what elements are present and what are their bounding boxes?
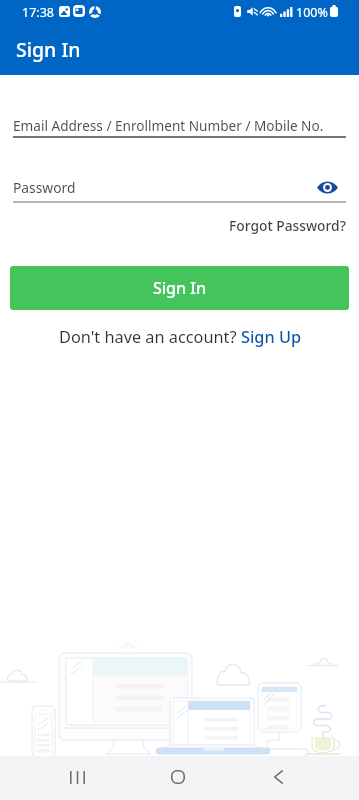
staticText: Password xyxy=(13,178,76,197)
button[interactable]: Back xyxy=(258,757,298,797)
staticText: 100% xyxy=(296,4,328,21)
button[interactable]: Show password xyxy=(315,175,339,199)
staticText: Don't have an account? xyxy=(59,326,241,348)
button[interactable]: Home xyxy=(158,757,198,797)
staticText: Sign In xyxy=(16,36,81,63)
staticText: 17:38 xyxy=(22,4,54,21)
button[interactable]: Sign In xyxy=(10,266,349,310)
button[interactable]: Recents xyxy=(57,757,97,797)
button[interactable]: Sign Up xyxy=(241,326,302,348)
button[interactable]: Forgot Password? xyxy=(229,216,346,235)
staticText: Sign In xyxy=(153,277,206,299)
staticText: Email Address / Enrollment Number / Mobi… xyxy=(13,116,324,135)
